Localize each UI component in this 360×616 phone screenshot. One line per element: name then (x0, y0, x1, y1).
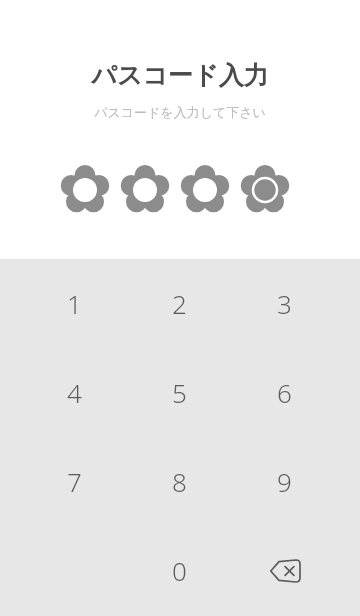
staticText: 3 (277, 286, 292, 321)
button[interactable]: 0 (127, 526, 232, 615)
staticText: 7 (67, 464, 82, 499)
button[interactable]: 1 (22, 259, 127, 348)
staticText: 9 (277, 464, 292, 499)
staticText: 6 (277, 375, 292, 410)
staticText: 5 (172, 375, 187, 410)
button[interactable]: 7 (22, 437, 127, 526)
button[interactable]: 2 (127, 259, 232, 348)
button[interactable]: 8 (127, 437, 232, 526)
staticText: パスコードを入力して下さい (0, 104, 360, 120)
button[interactable]: 4 (22, 348, 127, 437)
staticText: 2 (172, 286, 187, 321)
staticText: 8 (172, 464, 187, 499)
button[interactable]: 6 (232, 348, 337, 437)
staticText: 0 (172, 553, 187, 588)
staticText: 1 (67, 286, 82, 321)
button[interactable]: 5 (127, 348, 232, 437)
button[interactable]: 9 (232, 437, 337, 526)
staticText: パスコード入力 (0, 60, 360, 91)
button[interactable]: Delete (232, 526, 337, 615)
staticText: 4 (67, 375, 82, 410)
button[interactable]: 3 (232, 259, 337, 348)
